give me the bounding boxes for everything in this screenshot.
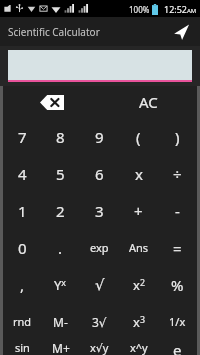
button[interactable]: 1 xyxy=(3,192,41,229)
button[interactable]: ( xyxy=(119,118,158,155)
button[interactable]: 2 xyxy=(41,192,80,229)
staticText: 3 xyxy=(95,201,104,221)
button[interactable]: x2 xyxy=(119,266,158,303)
staticText: x xyxy=(135,164,143,184)
staticText: 6 xyxy=(95,164,104,184)
button[interactable]: , xyxy=(3,266,41,303)
button[interactable]: e xyxy=(158,340,197,355)
button[interactable]: % xyxy=(158,266,197,303)
staticText: x3 xyxy=(133,313,145,331)
button[interactable]: 4 xyxy=(3,155,41,192)
button[interactable]: x xyxy=(119,155,158,192)
staticText: ) xyxy=(175,127,180,147)
button[interactable]: rnd xyxy=(3,303,41,340)
button[interactable]: 6 xyxy=(80,155,119,192)
staticText: x√y xyxy=(90,340,109,355)
staticText: √ xyxy=(95,276,105,293)
button[interactable]: AC xyxy=(100,86,197,118)
button[interactable]: x3 xyxy=(119,303,158,340)
button[interactable]: x^y xyxy=(119,340,158,355)
staticText: sin xyxy=(15,340,30,355)
staticText: M- xyxy=(53,314,68,330)
staticText: , xyxy=(20,275,25,295)
button[interactable]: 9 xyxy=(80,118,119,155)
button[interactable]: + xyxy=(119,192,158,229)
staticText: Yx xyxy=(54,276,67,294)
button[interactable]: 0 xyxy=(3,229,41,266)
button[interactable]: √ xyxy=(80,266,119,303)
staticText: 2 xyxy=(56,201,65,221)
staticText: % xyxy=(171,275,184,295)
button[interactable]: ) xyxy=(158,118,197,155)
button[interactable]: M+ xyxy=(41,340,80,355)
staticText: 7 xyxy=(18,127,27,147)
staticText: M+ xyxy=(52,340,70,355)
staticText: 1/x xyxy=(169,314,186,329)
button[interactable]: 1/x xyxy=(158,303,197,340)
button[interactable]: Send xyxy=(170,21,192,43)
button[interactable]: Backspace xyxy=(3,86,100,118)
staticText: exp xyxy=(90,240,109,255)
button[interactable]: Ans xyxy=(119,229,158,266)
staticText: + xyxy=(134,201,143,221)
staticText: - xyxy=(175,201,180,221)
staticText: 100% xyxy=(129,4,150,15)
staticText: 12:52AM xyxy=(164,3,197,15)
staticText: Scientific Calculator xyxy=(8,25,100,39)
button[interactable]: 5 xyxy=(41,155,80,192)
button[interactable]: . xyxy=(41,229,80,266)
staticText: Ans xyxy=(129,240,149,255)
staticText: 1 xyxy=(18,201,27,221)
button[interactable] xyxy=(8,50,192,82)
staticText: x^y xyxy=(130,340,148,355)
staticText: = xyxy=(173,238,182,258)
button[interactable]: ÷ xyxy=(158,155,197,192)
staticText: AC xyxy=(139,92,158,112)
staticText: 5 xyxy=(56,164,65,184)
staticText: 3√ xyxy=(92,314,107,330)
button[interactable]: M- xyxy=(41,303,80,340)
staticText: x2 xyxy=(133,276,145,294)
button[interactable]: 7 xyxy=(3,118,41,155)
staticText: ( xyxy=(136,127,141,147)
staticText: 0 xyxy=(18,238,27,258)
button[interactable]: 8 xyxy=(41,118,80,155)
button[interactable]: = xyxy=(158,229,197,266)
button[interactable]: 3 xyxy=(80,192,119,229)
staticText: 9 xyxy=(95,127,104,147)
button[interactable]: sin xyxy=(3,340,41,355)
button[interactable]: 3√ xyxy=(80,303,119,340)
staticText: e xyxy=(173,340,182,355)
button[interactable]: x√y xyxy=(80,340,119,355)
staticText: 4 xyxy=(18,164,27,184)
button[interactable]: Yx xyxy=(41,266,80,303)
button[interactable]: exp xyxy=(80,229,119,266)
staticText: 8 xyxy=(56,127,65,147)
staticText: ÷ xyxy=(173,164,182,184)
staticText: . xyxy=(58,238,63,258)
staticText: rnd xyxy=(13,314,32,329)
button[interactable]: - xyxy=(158,192,197,229)
